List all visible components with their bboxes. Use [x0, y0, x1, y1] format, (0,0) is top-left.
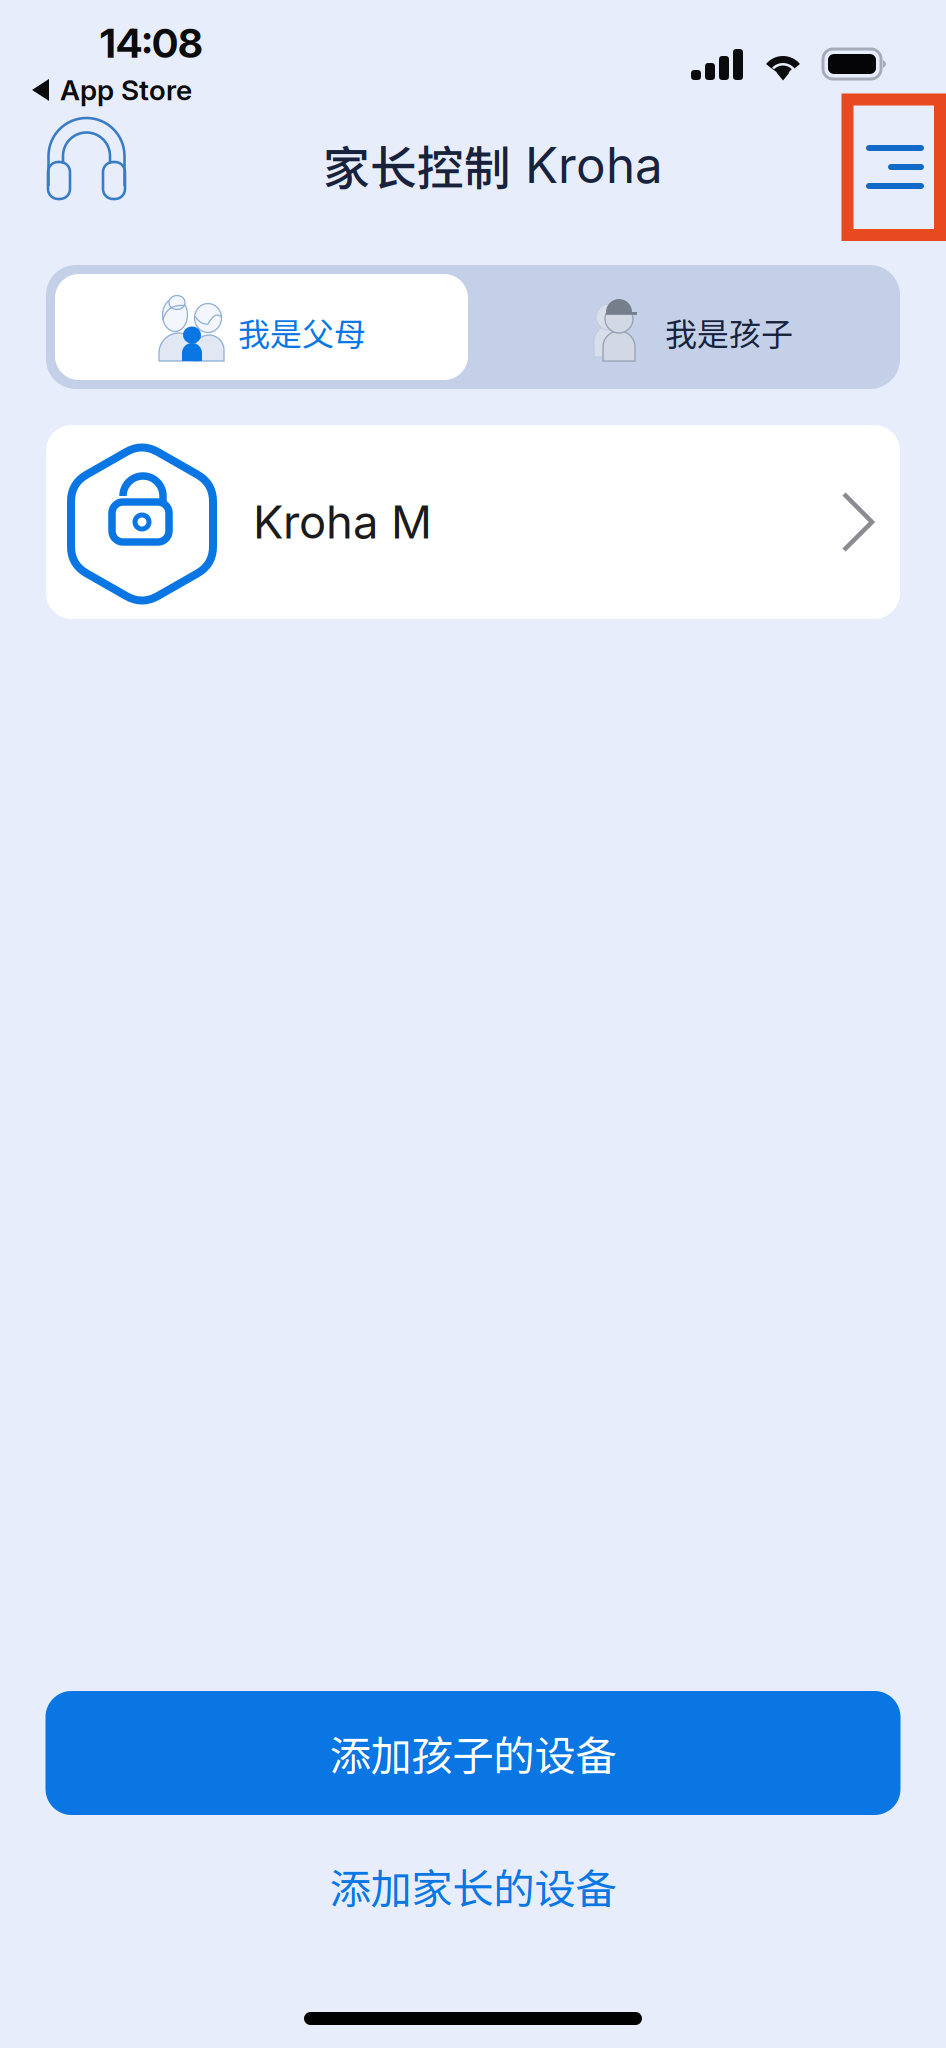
staticText: App Store: [60, 73, 192, 107]
button[interactable]: 添加家长的设备: [45, 1838, 900, 1934]
button[interactable]: Kroha M: [46, 425, 900, 619]
button[interactable]: 添加孩子的设备: [45, 1691, 900, 1815]
staticText: 我是孩子: [665, 309, 793, 355]
staticText: Kroha: [511, 135, 663, 195]
button[interactable]: Menu: [846, 125, 944, 211]
staticText: 添加孩子的设备: [329, 1723, 616, 1783]
button[interactable]: 我是父母: [55, 274, 468, 380]
button[interactable]: Support: [37, 108, 137, 210]
staticText: 14:08: [100, 19, 203, 67]
staticText: Kroha M: [253, 495, 432, 549]
button[interactable]: App Store: [30, 73, 192, 107]
staticText: 家长控制: [323, 131, 511, 199]
staticText: 我是父母: [238, 309, 366, 355]
staticText: 添加家长的设备: [329, 1856, 616, 1916]
button[interactable]: 我是孩子: [468, 274, 891, 380]
